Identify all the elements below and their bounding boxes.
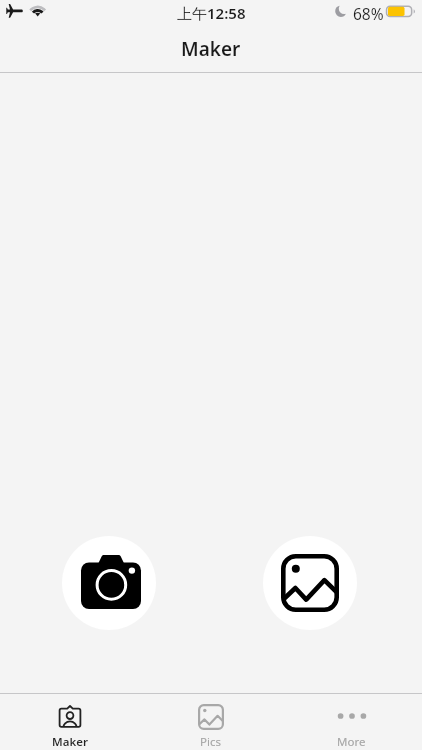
button[interactable]: Maker [0,694,140,750]
staticText: Pics [200,734,221,750]
button[interactable]: Pics [140,694,281,750]
staticText: 上午12:58 [177,3,246,23]
staticText: Maker [52,734,88,750]
staticText: Maker [181,36,241,62]
button[interactable]: More [281,694,422,750]
staticText: More [337,734,366,750]
button[interactable]: Take photo [62,536,156,630]
button[interactable]: Choose picture [263,536,357,630]
staticText: 68% [353,3,384,24]
